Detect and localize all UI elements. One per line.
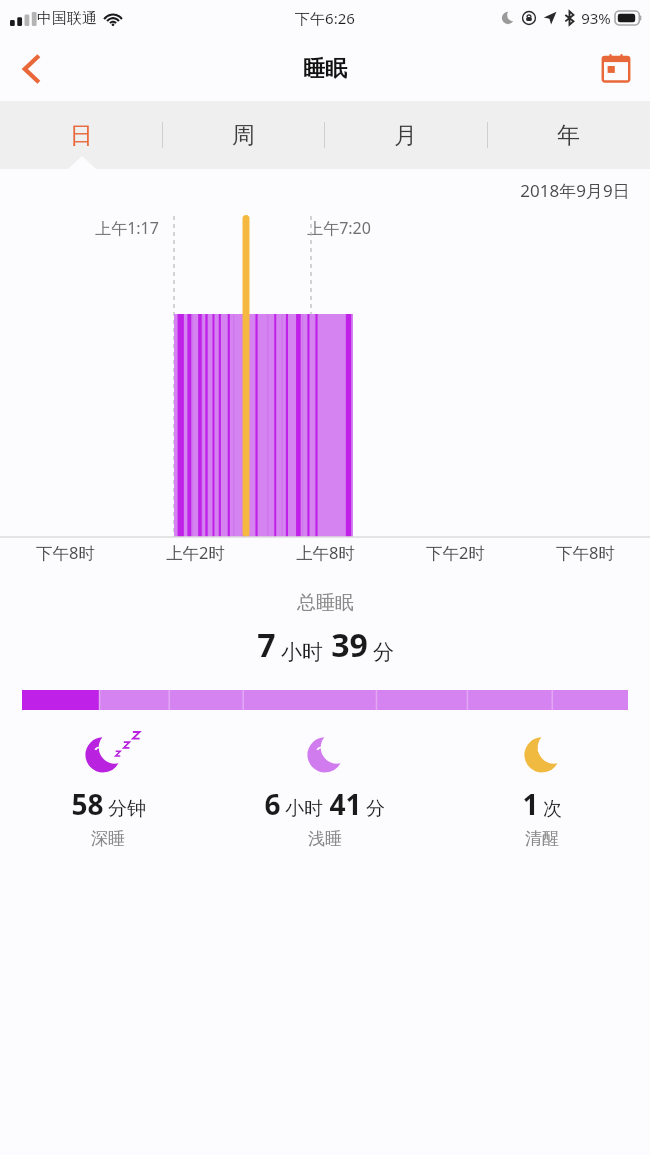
button[interactable]: 年 (487, 101, 650, 169)
staticText: 58 (71, 785, 104, 823)
staticText: 中国联通 (37, 9, 97, 28)
button[interactable]: 6 (216, 732, 433, 849)
staticText: 日 (70, 121, 93, 150)
staticText: 下午2时 (426, 541, 485, 564)
staticText: 下午8时 (36, 541, 95, 564)
staticText: 7 (257, 623, 276, 667)
staticText: 39 (331, 623, 368, 667)
staticText: 小时 (285, 797, 323, 821)
button[interactable]: 日 (0, 101, 162, 169)
staticText: 分 (366, 797, 385, 821)
button[interactable]: 返回 (6, 43, 58, 95)
staticText: 上午2时 (166, 541, 225, 564)
staticText: 41 (329, 785, 362, 823)
staticText: 次 (543, 797, 562, 821)
staticText: 深睡 (91, 828, 125, 849)
staticText: 上午7:20 (307, 217, 371, 239)
staticText: 6 (264, 785, 281, 823)
staticText: 睡眠 (303, 55, 347, 83)
staticText: 分钟 (108, 797, 146, 821)
staticText: 小时 (281, 639, 323, 665)
staticText: 总睡眠 (297, 591, 354, 615)
staticText: 年 (557, 121, 580, 150)
button[interactable]: 日历 (592, 45, 640, 93)
staticText: 分 (373, 639, 394, 665)
staticText: 上午1:17 (95, 217, 159, 239)
button[interactable]: 月 (324, 101, 487, 169)
staticText: 93% (581, 8, 611, 28)
staticText: 周 (232, 121, 255, 150)
button[interactable]: 周 (162, 101, 324, 169)
staticText: 上午8时 (296, 541, 355, 564)
staticText: 2018年9月9日 (520, 179, 630, 202)
button[interactable]: 1 (433, 732, 650, 849)
staticText: 月 (394, 121, 417, 150)
button[interactable]: 58 (0, 732, 216, 849)
staticText: 浅睡 (308, 828, 342, 849)
staticText: 下午6:26 (295, 8, 355, 28)
staticText: 清醒 (525, 828, 559, 849)
staticText: 1 (522, 785, 539, 823)
staticText: 下午8时 (556, 541, 615, 564)
